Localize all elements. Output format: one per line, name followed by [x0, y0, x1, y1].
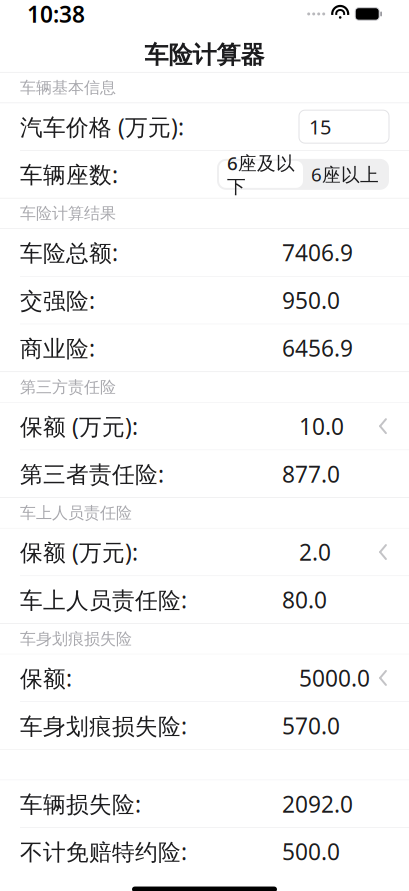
button[interactable]: 商业险:: [0, 324, 409, 371]
staticText: 950.0: [282, 285, 340, 315]
button[interactable]: 车身划痕损失险:: [0, 702, 409, 749]
button[interactable]: 第三者责任险:: [0, 450, 409, 497]
button[interactable]: 车险总额:: [0, 229, 409, 276]
staticText: 570.0: [282, 711, 340, 741]
staticText: 保额:: [20, 663, 72, 693]
button[interactable]: 交强险:: [0, 277, 409, 324]
staticText: 5000.0: [299, 663, 370, 693]
staticText: 500.0: [282, 836, 340, 867]
button[interactable]: 车辆损失险:: [0, 780, 409, 827]
button[interactable]: 不计免赔特约险:: [0, 828, 409, 875]
staticText: 2092.0: [282, 789, 353, 819]
staticText: 车身划痕损失险: [20, 629, 132, 649]
staticText: 10.0: [299, 411, 344, 441]
staticText: 不计免赔特约险:: [20, 836, 187, 867]
staticText: 车险计算结果: [20, 204, 116, 223]
staticText: 10:38: [27, 0, 85, 29]
staticText: 第三者责任险:: [20, 459, 164, 489]
staticText: 汽车价格 (万元):: [20, 112, 184, 142]
staticText: 车险总额:: [20, 237, 118, 268]
staticText: 6456.9: [282, 333, 353, 363]
button[interactable]: 保额:: [0, 654, 409, 701]
staticText: 交强险:: [20, 285, 95, 315]
staticText: 车上人员责任险: [20, 503, 132, 523]
button[interactable]: 保额 (万元):: [0, 528, 409, 575]
staticText: 车身划痕损失险:: [20, 711, 187, 741]
staticText: 保额 (万元):: [20, 537, 138, 567]
staticText: 2.0: [299, 537, 331, 567]
staticText: 车辆基本信息: [20, 78, 116, 97]
button[interactable]: 15: [299, 110, 389, 143]
staticText: 车辆损失险:: [20, 789, 141, 819]
button[interactable]: 6座及以下: [219, 161, 303, 188]
staticText: 6座以上: [311, 162, 379, 187]
button[interactable]: 6座以上: [303, 161, 387, 188]
staticText: 6座及以下: [227, 150, 295, 198]
button[interactable]: 车上人员责任险:: [0, 576, 409, 623]
staticText: 15: [309, 113, 331, 140]
staticText: 车险计算器: [144, 40, 264, 70]
button[interactable]: 保额 (万元):: [0, 403, 409, 450]
staticText: 商业险:: [20, 333, 95, 363]
staticText: 7406.9: [282, 237, 353, 268]
staticText: 第三方责任险: [20, 377, 116, 397]
staticText: 80.0: [282, 585, 327, 615]
staticText: 保额 (万元):: [20, 411, 138, 441]
staticText: 车上人员责任险:: [20, 585, 187, 615]
staticText: 车辆座数:: [20, 159, 118, 189]
staticText: 877.0: [282, 459, 340, 489]
